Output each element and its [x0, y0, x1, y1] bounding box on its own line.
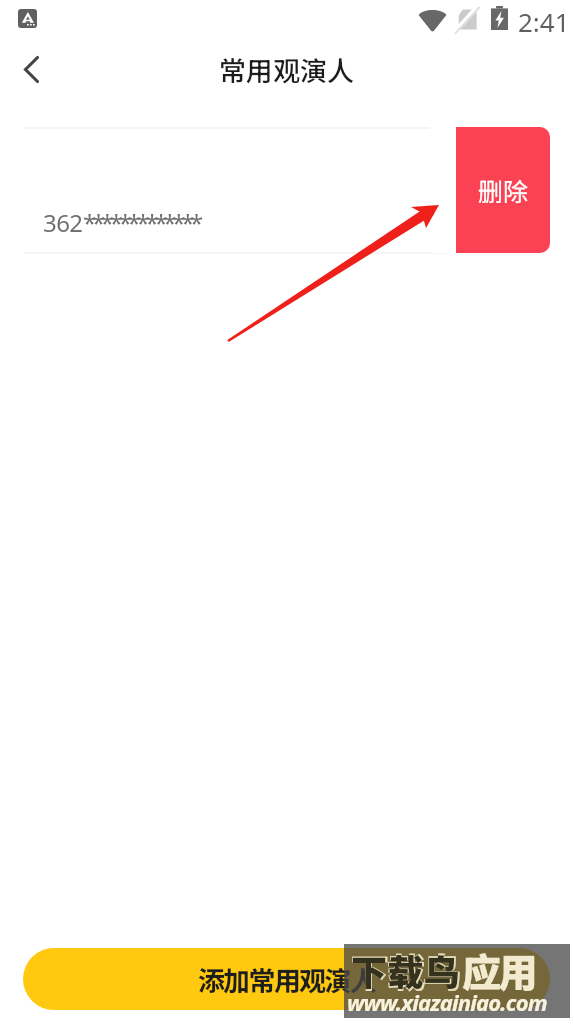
button[interactable]: 删除 [456, 127, 550, 253]
button[interactable]: 添加常用观演人 [23, 948, 550, 1010]
staticText: 删除 [478, 172, 529, 208]
staticText: 2:41 [518, 4, 570, 39]
staticText: 常用观演人 [219, 50, 354, 89]
staticText: 添加常用观演人 [198, 960, 376, 999]
staticText: 362 [43, 206, 83, 239]
staticText: www.xiazainiao.com [347, 987, 547, 1017]
staticText: 应用 [462, 942, 536, 998]
staticText: 下载鸟 [351, 944, 461, 996]
staticText: ************* [83, 206, 200, 239]
staticText: 下载鸟 [350, 942, 460, 998]
button[interactable]: Back [0, 44, 62, 94]
button[interactable]: 362 [0, 127, 574, 253]
